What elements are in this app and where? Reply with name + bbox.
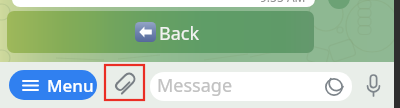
staticText: Menu: [47, 74, 94, 97]
button[interactable]: Back: [135, 21, 200, 43]
button[interactable]: Attach file: [105, 65, 144, 100]
staticText: Message: [157, 73, 233, 98]
staticText: 9:55 AM: [260, 0, 306, 5]
button[interactable]: Voice message: [360, 70, 386, 100]
button[interactable]: Message: [150, 72, 352, 101]
button[interactable]: Stickers: [323, 76, 345, 98]
staticText: Back: [159, 21, 200, 43]
button[interactable]: Menu: [9, 70, 97, 100]
